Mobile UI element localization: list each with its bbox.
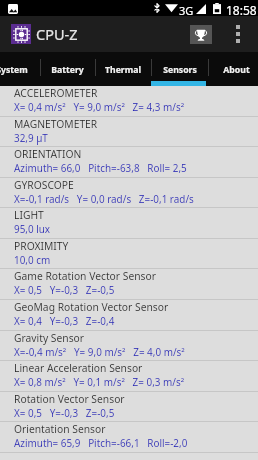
button[interactable]: PROXIMITY — [0, 239, 258, 270]
staticText: LIGHT — [14, 208, 44, 222]
staticText: 18:58 — [226, 2, 257, 18]
staticText: PROXIMITY — [14, 239, 69, 253]
staticText: ORIENTATION — [14, 147, 82, 161]
staticText: Rotation Vector Sensor — [14, 392, 125, 406]
button[interactable]: Orientation Sensor — [0, 422, 258, 453]
staticText: Battery — [51, 64, 84, 76]
staticText: 10,0 cm — [14, 253, 51, 266]
button[interactable]: Game Rotation Vector Sensor — [0, 269, 258, 300]
staticText: Sensors — [163, 64, 197, 76]
staticText: X=-0,4 m/s² Y= 9,0 m/s² Z= 4,0 m/s² — [14, 345, 185, 358]
staticText: Azimuth= 66,0 Pitch=-63,8 Roll= 2,5 — [14, 161, 187, 174]
staticText: CPU-Z — [36, 24, 78, 44]
staticText: X= 0,4 m/s² Y= 9,0 m/s² Z= 4,3 m/s² — [14, 100, 185, 113]
staticText: Linear Acceleration Sensor — [14, 361, 143, 375]
staticText: ACCELEROMETER — [14, 86, 98, 100]
button[interactable]: ORIENTATION — [0, 147, 258, 178]
staticText: Orientation Sensor — [14, 422, 106, 436]
staticText: X= 0,5 Y=-0,3 Z=-0,5 — [14, 406, 115, 419]
button[interactable]: MAGNETOMETER — [0, 117, 258, 148]
staticText: GYROSCOPE — [14, 178, 74, 192]
button[interactable]: About — [208, 52, 258, 86]
button[interactable]: Rotation Vector Sensor — [0, 392, 258, 423]
staticText: GeoMag Rotation Vector Sensor — [14, 300, 169, 314]
staticText: 3G — [179, 3, 194, 18]
button[interactable]: LIGHT — [0, 208, 258, 239]
button[interactable]: Thermal — [95, 52, 151, 86]
staticText: 95,0 lux — [14, 222, 51, 235]
button[interactable]: GeoMag Rotation Vector Sensor — [0, 300, 258, 331]
staticText: MAGNETOMETER — [14, 117, 98, 131]
staticText: Thermal — [105, 64, 141, 76]
button[interactable]: GYROSCOPE — [0, 178, 258, 209]
staticText: About — [223, 64, 250, 76]
button[interactable]: Sensors — [151, 52, 209, 86]
staticText: Gravity Sensor — [14, 331, 85, 345]
staticText: System — [0, 64, 28, 76]
button[interactable]: Battery — [40, 52, 95, 86]
staticText: X= 0,4 Y=-0,3 Z=-0,4 — [14, 314, 115, 327]
staticText: Azimuth= 65,9 Pitch=-66,1 Roll=-2,0 — [14, 436, 188, 449]
staticText: X= 0,8 m/s² Y= 0,1 m/s² Z= 0,3 m/s² — [14, 375, 185, 388]
button[interactable]: Benchmark — [190, 25, 212, 44]
staticText: X=-0,1 rad/s Y= 0,0 rad/s Z=-0,1 rad/s — [14, 192, 194, 205]
button[interactable]: ACCELEROMETER — [0, 86, 258, 117]
staticText: X= 0,5 Y=-0,3 Z=-0,5 — [14, 283, 115, 296]
staticText: 32,9 µT — [14, 131, 48, 144]
staticText: Game Rotation Vector Sensor — [14, 269, 156, 283]
button[interactable]: More options — [230, 22, 246, 46]
button[interactable]: System — [0, 52, 40, 86]
button[interactable]: Gravity Sensor — [0, 331, 258, 362]
button[interactable]: Linear Acceleration Sensor — [0, 361, 258, 392]
